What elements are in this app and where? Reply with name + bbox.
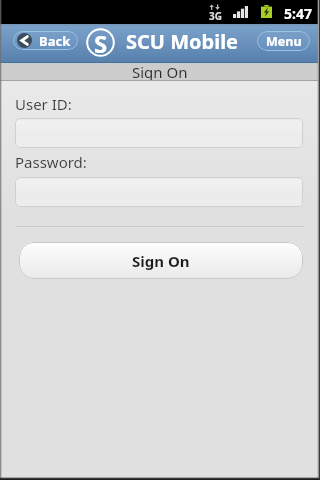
button[interactable] <box>15 118 303 148</box>
staticText: Menu <box>266 33 302 50</box>
staticText: Back <box>39 32 71 50</box>
staticText: 3G <box>209 9 222 23</box>
button[interactable]: Sign On <box>19 242 303 279</box>
button[interactable] <box>15 177 303 207</box>
staticText: SCU Mobile <box>126 28 239 55</box>
staticText: S <box>94 27 108 56</box>
staticText: Sign On <box>132 251 190 271</box>
button[interactable]: Back <box>13 31 78 50</box>
button[interactable]: Menu <box>257 31 310 51</box>
staticText: 5:47 <box>284 4 312 23</box>
staticText: Password: <box>15 152 87 172</box>
staticText: Sign On <box>132 62 188 80</box>
staticText: User ID: <box>15 94 72 114</box>
